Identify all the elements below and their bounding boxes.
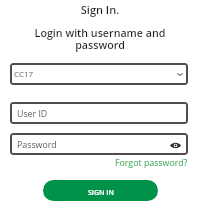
staticText: User ID [17,108,48,120]
button[interactable]: Show password [169,139,182,152]
staticText: Password [17,139,57,151]
button[interactable]: User ID [10,102,188,124]
button[interactable]: Password [10,133,188,155]
staticText: CC17 [14,68,34,79]
button[interactable]: Forgot password? [115,156,200,170]
button[interactable]: CC17 [10,63,188,85]
button[interactable]: SIGN IN [43,180,158,201]
staticText: Sign In. [0,2,200,17]
staticText: SIGN IN [88,188,114,198]
staticText: Login with username and password [32,26,168,52]
